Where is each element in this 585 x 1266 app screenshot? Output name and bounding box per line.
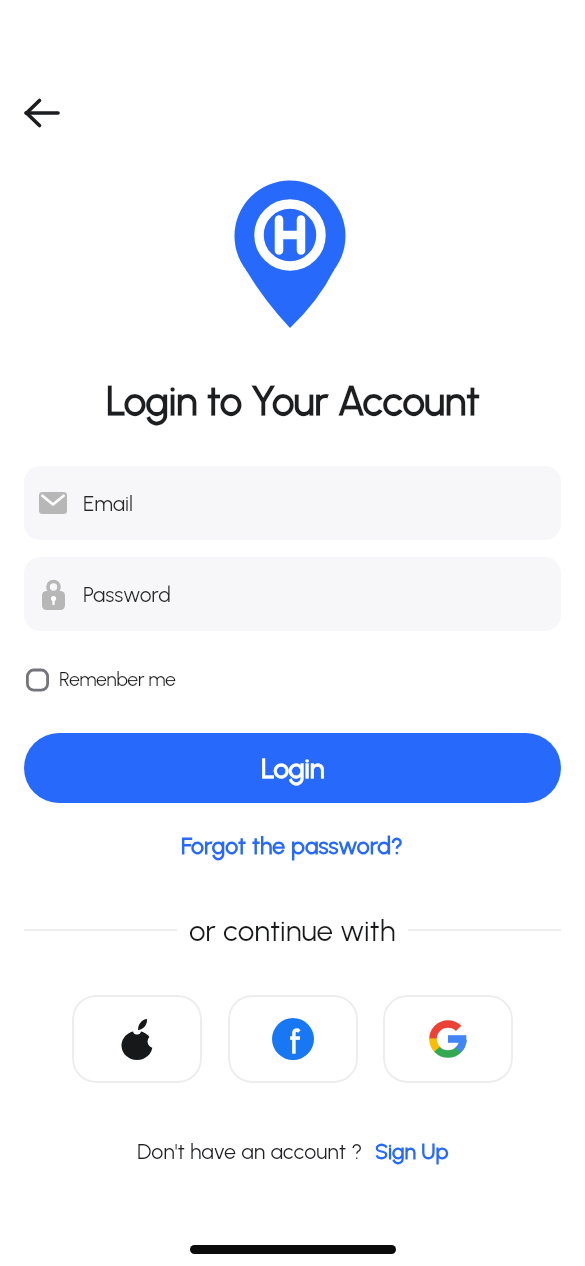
button[interactable]: Login xyxy=(24,733,561,803)
button[interactable] xyxy=(14,88,70,138)
staticText: Password xyxy=(83,582,171,607)
button[interactable]: Remenber me xyxy=(26,667,176,690)
button[interactable]: Password xyxy=(24,557,561,631)
staticText: Login xyxy=(261,752,325,785)
staticText: f xyxy=(290,1024,301,1060)
button[interactable] xyxy=(383,995,513,1083)
staticText: Email xyxy=(83,491,133,516)
button[interactable]: Forgot the password? xyxy=(181,832,404,860)
button[interactable]: Email xyxy=(24,466,561,540)
staticText: or continue with xyxy=(189,913,396,948)
staticText: Remenber me xyxy=(59,667,176,690)
button[interactable] xyxy=(72,995,202,1083)
staticText: Don't have an account ? xyxy=(137,1139,363,1165)
staticText: Login to Your Account xyxy=(106,377,480,425)
button[interactable]: f xyxy=(228,995,358,1083)
button[interactable]: Sign Up xyxy=(375,1139,449,1165)
